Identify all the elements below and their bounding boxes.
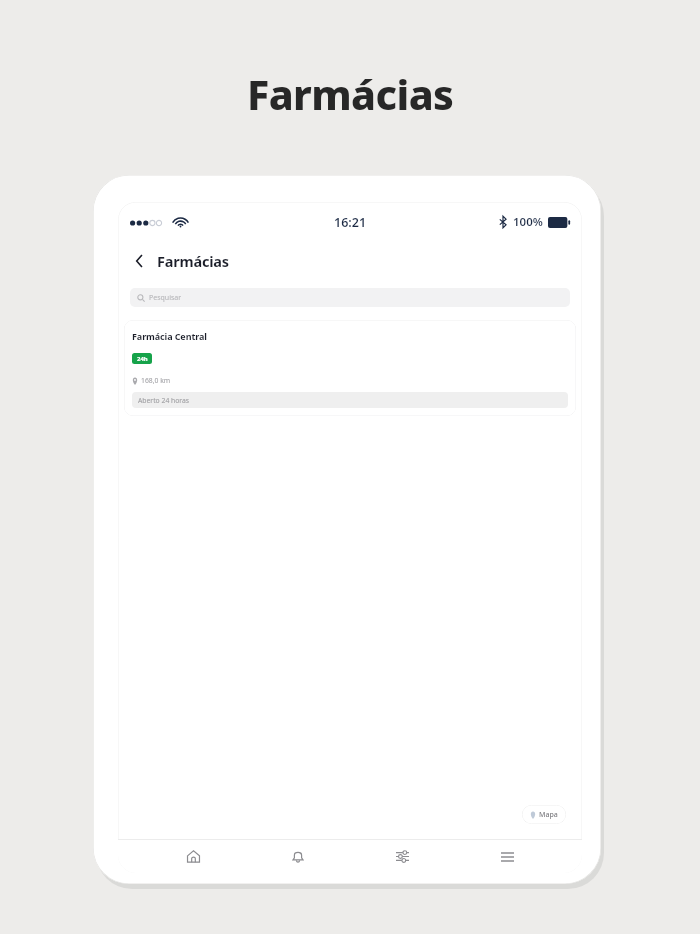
- button[interactable]: Home: [163, 840, 223, 873]
- staticText: 168,0 km: [141, 376, 171, 385]
- staticText: 24h: [137, 355, 148, 363]
- button[interactable]: Notifications: [268, 840, 328, 873]
- staticText: Farmácia Central: [132, 330, 207, 342]
- staticText: 100%: [513, 214, 543, 230]
- staticText: Mapa: [539, 810, 558, 820]
- button[interactable]: Menu: [477, 840, 537, 873]
- staticText: Pesquisar: [149, 293, 182, 303]
- button[interactable]: Back: [129, 251, 149, 271]
- staticText: Aberto 24 horas: [138, 396, 190, 405]
- button[interactable]: Mapa: [522, 805, 566, 824]
- button[interactable]: Farmácia Central: [124, 320, 576, 416]
- staticText: 16:21: [334, 214, 367, 231]
- button[interactable]: Filters: [372, 840, 432, 873]
- staticText: Farmácias: [247, 66, 454, 122]
- button[interactable]: Pesquisar: [130, 288, 570, 307]
- staticText: Farmácias: [157, 251, 229, 271]
